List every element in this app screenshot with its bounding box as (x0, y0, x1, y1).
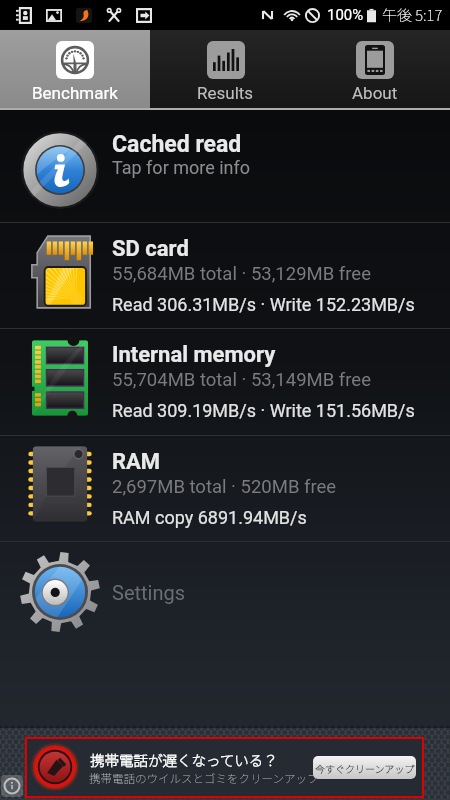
staticText: 今すぐクリーンアップ (315, 761, 415, 775)
staticText: Tap for more info (112, 157, 251, 178)
staticText: Read 309.19MB/s · Write 151.56MB/s (112, 400, 415, 421)
staticText: 55,684MB total · 53,129MB free (112, 263, 371, 285)
staticText: Results (197, 83, 254, 103)
staticText: RAM copy 6891.94MB/s (112, 507, 307, 528)
staticText: RAM (112, 449, 161, 475)
button[interactable] (0, 223, 450, 328)
staticText: Read 306.31MB/s · Write 152.23MB/s (112, 294, 415, 315)
staticText: 100% (327, 6, 364, 24)
staticText: About (352, 83, 398, 103)
staticText: 携帯電話のウイルスとゴミをクリーンアップ (89, 770, 319, 787)
button[interactable] (0, 436, 450, 541)
staticText: 携帯電話が遅くなっている？ (90, 749, 278, 770)
staticText: Benchmark (32, 83, 118, 103)
staticText: Internal memory (112, 342, 276, 368)
staticText: Cached read (112, 131, 242, 158)
staticText: 55,704MB total · 53,149MB free (112, 369, 371, 391)
staticText: SD card (112, 236, 189, 262)
button[interactable]: Results (150, 30, 300, 108)
button[interactable]: 携帯電話が遅くなっている？ (27, 739, 422, 796)
button[interactable] (0, 329, 450, 435)
button[interactable]: Benchmark (0, 30, 150, 108)
button[interactable]: About (300, 30, 450, 108)
staticText: 午後 5:17 (382, 4, 443, 26)
staticText: 2,697MB total · 520MB free (112, 476, 337, 498)
button[interactable] (0, 110, 450, 222)
button[interactable]: 今すぐクリーンアップ (313, 756, 416, 779)
staticText: Settings (112, 581, 186, 604)
button[interactable] (0, 542, 450, 644)
